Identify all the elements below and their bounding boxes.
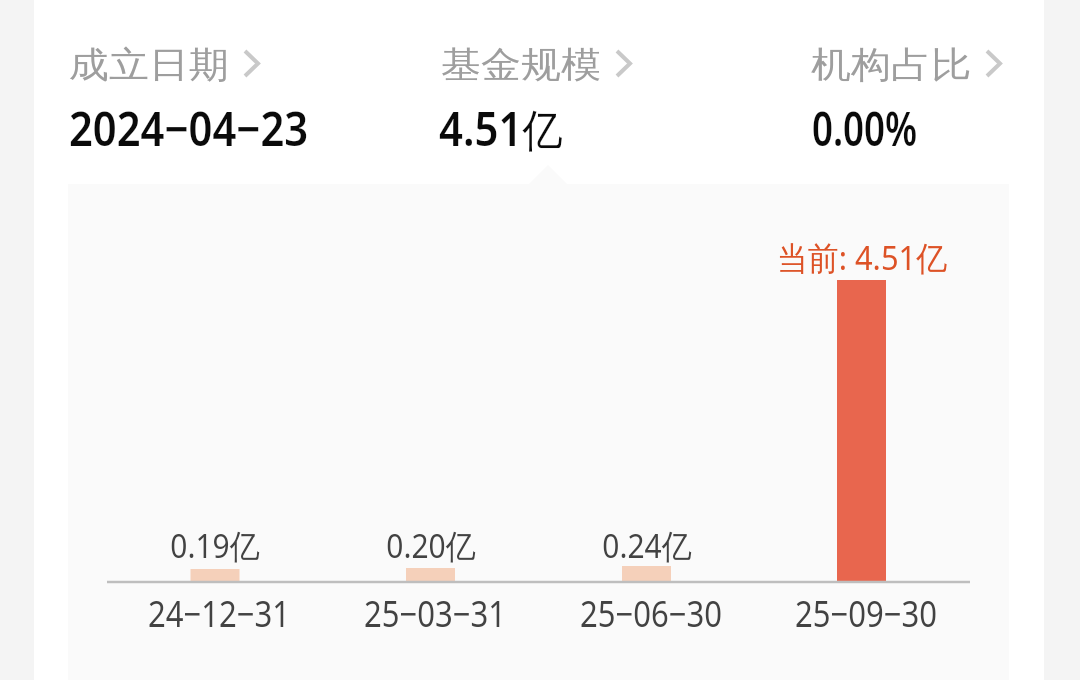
staticText: 25−06−30 xyxy=(522,589,780,638)
staticText: 24−12−31 xyxy=(90,589,348,638)
staticText: 0.24亿 xyxy=(511,523,783,568)
staticText: 0.20亿 xyxy=(295,523,567,568)
staticText: 0.19亿 xyxy=(79,523,351,568)
staticText: 当前: 4.51亿 xyxy=(722,235,1002,280)
button[interactable]: 0.19亿 xyxy=(68,184,1009,680)
staticText: 25−03−31 xyxy=(306,589,564,638)
button[interactable]: 基金规模 xyxy=(441,42,636,87)
staticText: 4.51亿 xyxy=(439,96,563,160)
button[interactable]: 成立日期 xyxy=(69,42,264,87)
staticText: 0.00% xyxy=(812,96,917,160)
staticText: 基金规模 xyxy=(441,42,601,87)
other: 成立日期 详情 xyxy=(243,49,260,78)
other: 机构占比 详情 xyxy=(985,49,1002,78)
staticText: 25−09−30 xyxy=(737,589,995,638)
other: 基金规模 详情 xyxy=(615,49,632,78)
button[interactable]: 机构占比 xyxy=(811,42,1006,87)
staticText: 成立日期 xyxy=(69,42,229,87)
staticText: 2024−04−23 xyxy=(69,96,309,160)
staticText: 机构占比 xyxy=(811,42,971,87)
